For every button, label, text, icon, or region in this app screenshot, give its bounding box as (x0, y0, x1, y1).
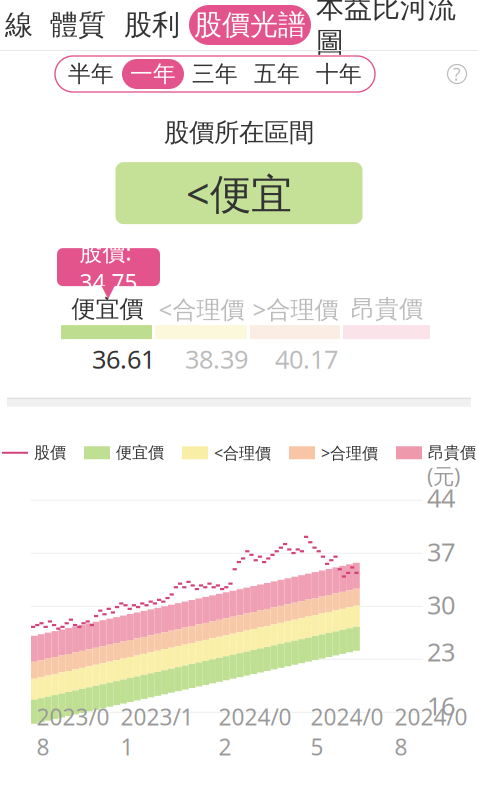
staticText: ? (453, 62, 461, 85)
button[interactable]: 體質 (41, 2, 115, 48)
staticText: 2024/02 (218, 702, 291, 762)
staticText: <合理價 (158, 293, 244, 325)
staticText: 44 (427, 481, 455, 514)
staticText: 2024/08 (394, 702, 467, 762)
staticText: 37 (427, 535, 455, 568)
staticText: >合理價 (252, 293, 338, 325)
staticText: 2023/11 (120, 702, 193, 762)
staticText: 38.39 (185, 342, 248, 376)
button[interactable]: 線 (0, 2, 41, 48)
staticText: 2023/08 (36, 702, 109, 762)
staticText: 便宜價 (71, 294, 143, 324)
staticText: 十年 (316, 60, 362, 88)
button[interactable]: 半年 (60, 59, 122, 89)
staticText: 23 (427, 635, 455, 668)
button[interactable]: 三年 (184, 59, 246, 89)
staticText: 股價: 34.75 (79, 237, 137, 297)
button[interactable]: 說明 (447, 64, 466, 83)
staticText: 36.61 (92, 342, 155, 376)
button[interactable]: 股利 (115, 2, 189, 48)
button[interactable]: 本益比河流圖 (311, 2, 461, 48)
staticText: <便宜 (186, 166, 292, 221)
staticText: 16 (427, 689, 455, 722)
button[interactable]: 一年 (122, 59, 184, 89)
staticText: 半年 (68, 60, 114, 88)
staticText: 股價 (34, 443, 66, 463)
staticText: 便宜價 (116, 443, 164, 463)
staticText: 三年 (192, 60, 238, 88)
button[interactable]: 十年 (308, 59, 370, 89)
staticText: 五年 (254, 60, 300, 88)
staticText: 昂貴價 (351, 294, 423, 324)
staticText: 股利 (124, 8, 180, 42)
staticText: ▼ (101, 281, 114, 301)
staticText: >合理價 (321, 442, 378, 463)
staticText: 一年 (130, 60, 176, 88)
staticText: 股價光譜 (194, 8, 306, 42)
staticText: 本益比河流圖 (316, 0, 456, 59)
staticText: 40.17 (275, 342, 338, 376)
staticText: 股價所在區間 (164, 117, 314, 148)
staticText: 昂貴價 (428, 443, 476, 463)
staticText: (元) (427, 462, 460, 490)
staticText: 體質 (50, 8, 106, 42)
staticText: 30 (427, 588, 455, 621)
staticText: 線 (5, 8, 33, 42)
button[interactable]: 五年 (246, 59, 308, 89)
staticText: <合理價 (214, 442, 271, 463)
button[interactable]: 股價光譜 (189, 5, 311, 45)
staticText: 2024/05 (310, 702, 383, 762)
